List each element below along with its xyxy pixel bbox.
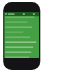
button[interactable] — [4, 16, 60, 21]
button[interactable] — [4, 36, 60, 41]
button[interactable]: Menu — [4, 12, 60, 16]
button[interactable] — [4, 31, 60, 36]
button[interactable] — [4, 46, 60, 51]
button[interactable] — [4, 41, 60, 46]
button[interactable] — [4, 51, 60, 56]
button[interactable] — [4, 21, 60, 26]
button[interactable] — [4, 56, 60, 58]
button[interactable] — [4, 26, 60, 31]
